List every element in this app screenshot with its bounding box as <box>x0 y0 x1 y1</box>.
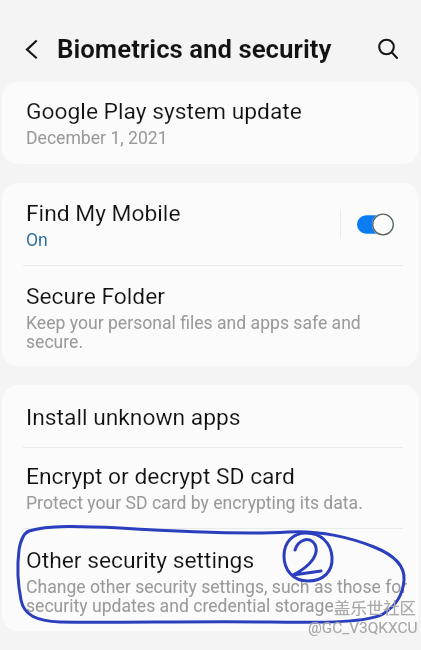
staticText: Secure Folder <box>26 283 165 310</box>
button[interactable]: Other security settings <box>2 529 419 631</box>
button[interactable]: Secure Folder <box>2 266 419 366</box>
staticText: 盖乐世社区 <box>334 595 416 619</box>
button[interactable]: Find My Mobile toggle <box>357 213 394 236</box>
staticText: Biometrics and security <box>57 34 332 64</box>
staticText: Google Play system update <box>26 98 302 125</box>
staticText: Keep your personal files and apps safe a… <box>26 313 367 352</box>
button[interactable]: Encrypt or decrypt SD card <box>2 448 419 528</box>
staticText: Change other security settings, such as … <box>26 577 411 616</box>
staticText: Encrypt or decrypt SD card <box>26 463 295 490</box>
button[interactable]: Google Play system update <box>2 82 419 164</box>
staticText: Find My Mobile <box>26 200 181 227</box>
button[interactable]: Install unknown apps <box>2 385 419 447</box>
button[interactable]: Back <box>14 31 50 67</box>
staticText: Install unknown apps <box>26 404 241 431</box>
staticText: Other security settings <box>26 547 255 574</box>
button[interactable]: Find My Mobile <box>2 183 340 265</box>
staticText: December 1, 2021 <box>26 128 168 149</box>
staticText: @GC_V3QKXCU <box>308 619 418 637</box>
button[interactable]: Search <box>368 31 404 67</box>
staticText: On <box>26 230 48 251</box>
staticText: Protect your SD card by encrypting its d… <box>26 493 363 514</box>
